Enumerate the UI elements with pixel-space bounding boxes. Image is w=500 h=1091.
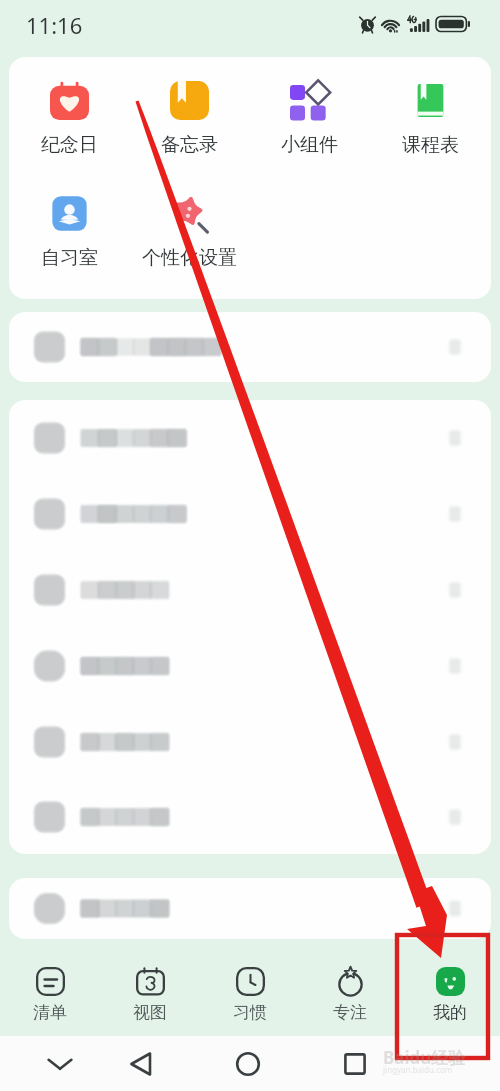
staticText: 小组件 [281, 133, 338, 157]
button[interactable]: 视图 [100, 940, 200, 1023]
staticText: 个性化设置 [142, 246, 237, 270]
button[interactable] [9, 878, 491, 939]
button[interactable]: 专注 [300, 940, 400, 1023]
button[interactable]: 备忘录 [129, 81, 249, 157]
button[interactable] [9, 628, 491, 704]
staticText: 我的 [433, 1002, 467, 1023]
button[interactable]: 自习室 [9, 194, 129, 270]
staticText: 备忘录 [161, 133, 218, 157]
staticText: 视图 [133, 1002, 167, 1023]
button[interactable]: 清单 [0, 940, 100, 1023]
staticText: 11:16 [26, 10, 83, 40]
button[interactable]: 习惯 [200, 940, 300, 1023]
staticText: 专注 [333, 1002, 367, 1023]
button[interactable]: 小组件 [249, 81, 370, 157]
staticText: 清单 [33, 1002, 67, 1023]
button[interactable]: Recents [327, 1042, 383, 1086]
button[interactable]: Back [113, 1042, 169, 1086]
button[interactable]: 课程表 [370, 81, 491, 157]
button[interactable]: Hide keyboard [32, 1042, 88, 1086]
button[interactable]: 纪念日 [9, 81, 129, 157]
staticText: 习惯 [233, 1002, 267, 1023]
staticText: 纪念日 [41, 133, 98, 157]
button[interactable] [9, 312, 491, 382]
button[interactable] [9, 400, 491, 476]
button[interactable]: Home [220, 1042, 276, 1086]
button[interactable] [9, 704, 491, 780]
button[interactable] [9, 780, 491, 854]
button[interactable]: 个性化设置 [129, 194, 249, 270]
staticText: jingyan.baidu.com [383, 1064, 453, 1075]
button[interactable]: 我的 [400, 940, 500, 1023]
staticText: 课程表 [402, 133, 459, 157]
button[interactable] [9, 476, 491, 552]
staticText: Baidu经验 [383, 1046, 466, 1069]
staticText: 自习室 [41, 246, 98, 270]
button[interactable] [9, 552, 491, 628]
